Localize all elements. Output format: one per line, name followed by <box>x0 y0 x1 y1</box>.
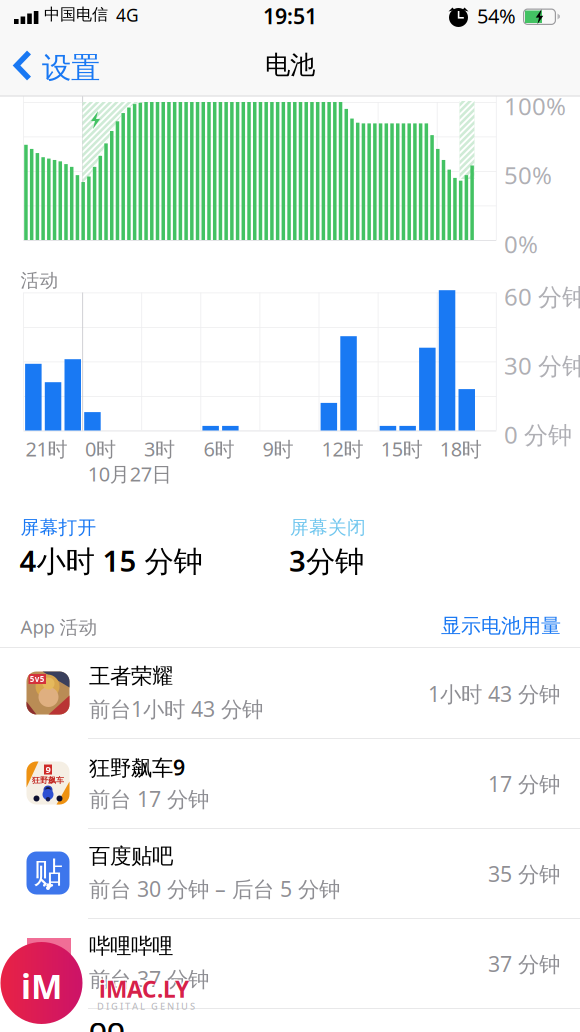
staticText: 6时 <box>203 435 234 462</box>
staticText: 活动 <box>20 269 58 292</box>
button[interactable]: 9 <box>0 738 580 828</box>
staticText: 60 分钟 <box>504 280 580 312</box>
staticText: 15时 <box>381 435 423 462</box>
staticText: 0时 <box>85 435 116 462</box>
staticText: 显示电池用量 <box>441 613 561 638</box>
staticText: 35 分钟 <box>488 859 560 888</box>
staticText: 9时 <box>262 435 293 462</box>
staticText: 贴 <box>33 854 62 890</box>
staticText: 100% <box>504 90 566 122</box>
staticText: 0% <box>504 228 538 260</box>
staticText: App 活动 <box>20 614 97 639</box>
staticText: 54% <box>477 2 516 29</box>
staticText: 21时 <box>25 435 67 462</box>
button[interactable]: 5v5 <box>0 648 580 738</box>
staticText: 屏幕关闭 <box>290 516 366 539</box>
button[interactable]: 哔哩哔哩 <box>0 918 580 1008</box>
staticText: 狂野飙车 <box>32 775 64 785</box>
staticText: 50% <box>504 159 552 191</box>
button[interactable]: 显示电池用量 <box>301 613 561 638</box>
staticText: 10月27日 <box>88 460 172 487</box>
staticText: 17 分钟 <box>488 769 560 798</box>
staticText: 4G <box>116 3 139 26</box>
staticText: 王者荣耀 <box>89 663 173 689</box>
staticText: 中国电信 <box>44 4 108 24</box>
staticText: 屏幕打开 <box>20 516 96 539</box>
staticText: 18时 <box>440 435 482 462</box>
staticText: 百度贴吧 <box>89 843 173 869</box>
staticText: 哔哩哔哩 <box>89 933 173 959</box>
staticText: 狂野飙车9 <box>89 753 185 781</box>
staticText: 3时 <box>144 435 175 462</box>
staticText: iM <box>21 964 62 1008</box>
staticText: 1小时 43 分钟 <box>428 679 560 708</box>
staticText: D I G I T A L G E N I U S <box>97 1000 195 1012</box>
staticText: 前台1小时 43 分钟 <box>89 694 263 723</box>
staticText: 设置 <box>42 50 100 86</box>
staticText: 5v5 <box>30 674 45 684</box>
staticText: iMAC.LY <box>97 972 187 1003</box>
staticText: 4小时 15 分钟 <box>19 541 202 580</box>
staticText: 3分钟 <box>289 541 364 580</box>
staticText: 0 分钟 <box>504 418 572 450</box>
staticText: iMAC.LY <box>99 974 189 1004</box>
button[interactable]: 贴 <box>0 828 580 918</box>
staticText: 前台 37 分钟 <box>89 964 209 993</box>
staticText: 电池 <box>265 49 315 80</box>
staticText: 37 分钟 <box>488 949 560 978</box>
staticText: QQ <box>89 1016 125 1032</box>
staticText: iMAC.LY <box>100 975 190 1006</box>
staticText: 9 <box>45 763 50 776</box>
staticText: 前台 17 分钟 <box>89 784 209 813</box>
staticText: 30 分钟 <box>504 349 580 381</box>
staticText: 12时 <box>322 435 364 462</box>
button[interactable]: 设置 <box>0 44 112 92</box>
staticText: 前台 30 分钟 – 后台 5 分钟 <box>89 874 340 903</box>
staticText: 19:51 <box>263 2 317 30</box>
